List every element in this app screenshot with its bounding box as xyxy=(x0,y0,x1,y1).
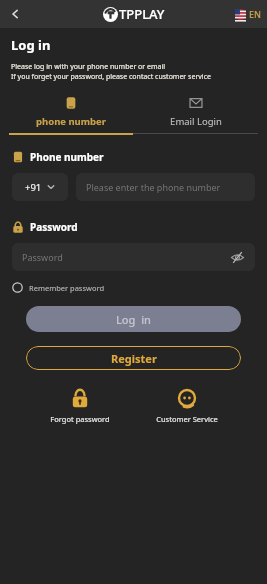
staticText: Password xyxy=(22,251,229,263)
button[interactable]: Password xyxy=(12,243,255,271)
staticText: Remember password xyxy=(29,283,105,293)
staticText: Log in xyxy=(116,312,152,327)
button[interactable]: Log in xyxy=(26,306,241,332)
button[interactable]: Remember password xyxy=(12,282,105,293)
staticText: Please log in with your phone number or … xyxy=(11,62,166,72)
staticText: Register xyxy=(111,351,157,366)
button[interactable]: Language English xyxy=(235,8,261,20)
button[interactable]: Please enter the phone number xyxy=(76,173,255,201)
staticText: Customer Service xyxy=(156,414,218,424)
button[interactable]: Register xyxy=(26,346,241,370)
staticText: Forgot password xyxy=(50,414,110,424)
staticText: phone number xyxy=(36,115,106,128)
button[interactable]: Forgot password xyxy=(26,388,133,424)
staticText: Phone number xyxy=(30,150,104,164)
staticText: +91 xyxy=(25,181,42,194)
staticText: EN xyxy=(249,8,261,20)
staticText: Email Login xyxy=(170,115,222,128)
button[interactable]: Email Login xyxy=(133,96,258,134)
staticText: If you forget your password, please cont… xyxy=(11,72,211,82)
staticText: Please enter the phone number xyxy=(86,181,221,193)
button[interactable]: Customer Service xyxy=(133,388,241,424)
staticText: Password xyxy=(30,220,78,234)
button[interactable]: Show password xyxy=(229,249,245,265)
button[interactable]: Back xyxy=(4,3,26,25)
button[interactable]: +91 xyxy=(12,173,68,201)
button[interactable]: phone number xyxy=(9,96,133,135)
staticText: Log in xyxy=(11,36,51,54)
staticText: TPPLAY xyxy=(119,5,165,23)
